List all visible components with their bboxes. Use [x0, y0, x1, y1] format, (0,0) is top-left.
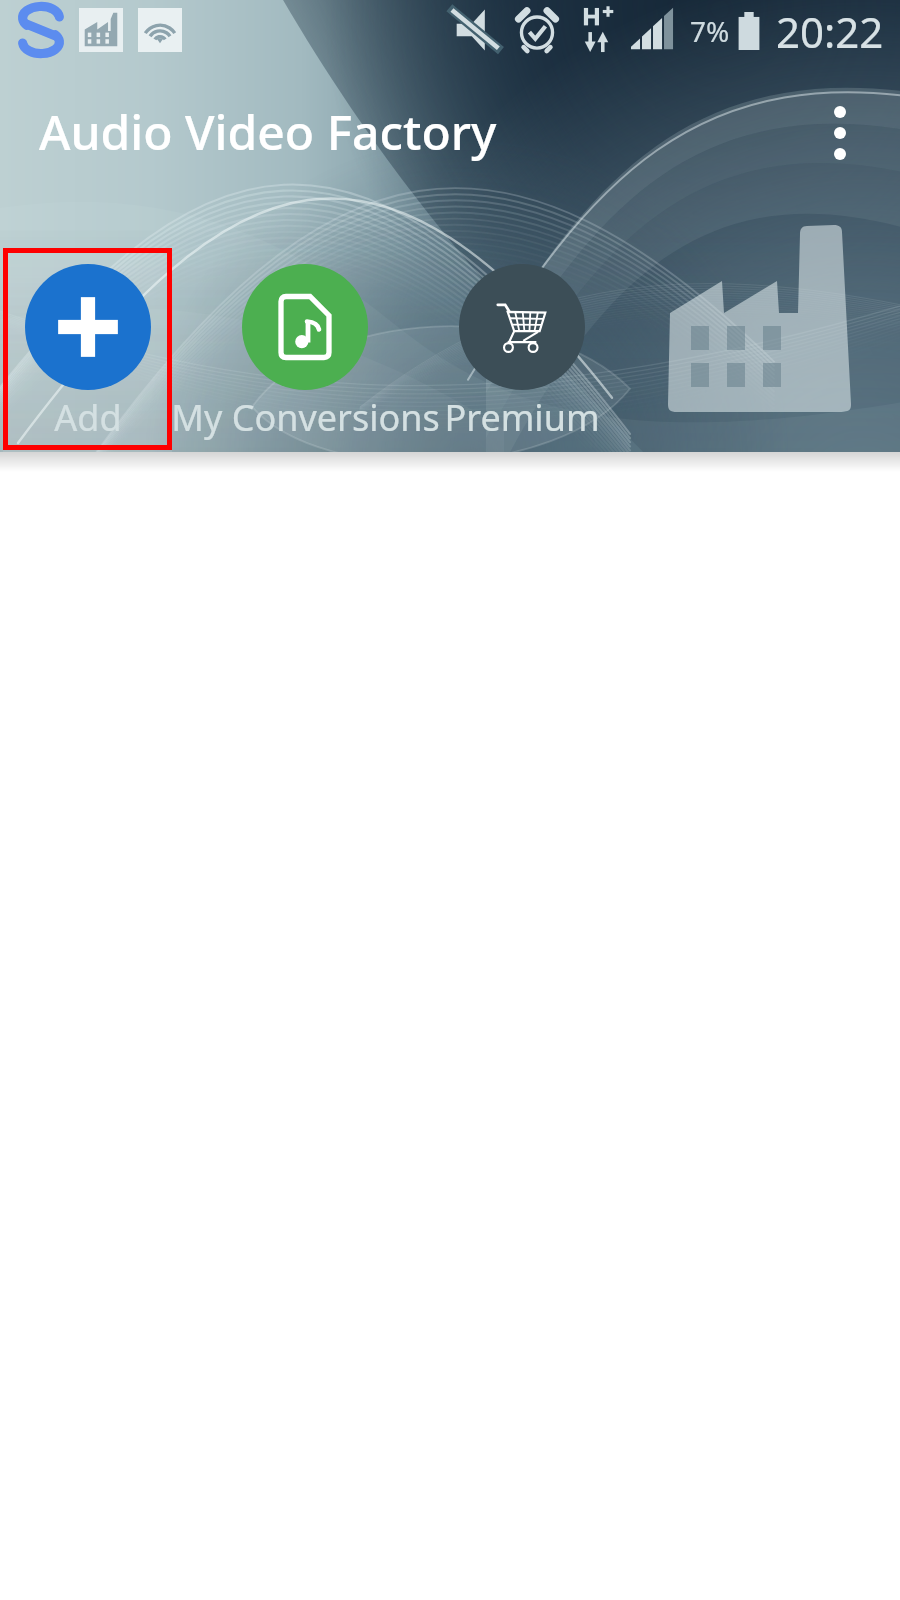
button[interactable]: Premium — [438, 248, 606, 452]
staticText: 7% — [690, 12, 730, 50]
staticText: 20:22 — [776, 3, 884, 60]
staticText: Premium — [444, 393, 600, 442]
button[interactable]: Add — [3, 248, 172, 452]
staticText: Audio Video Factory — [39, 99, 497, 164]
staticText: My Conversions — [171, 393, 440, 442]
button[interactable]: More options — [807, 100, 873, 166]
button[interactable]: My Conversions — [176, 248, 434, 452]
staticText: Add — [54, 393, 122, 442]
